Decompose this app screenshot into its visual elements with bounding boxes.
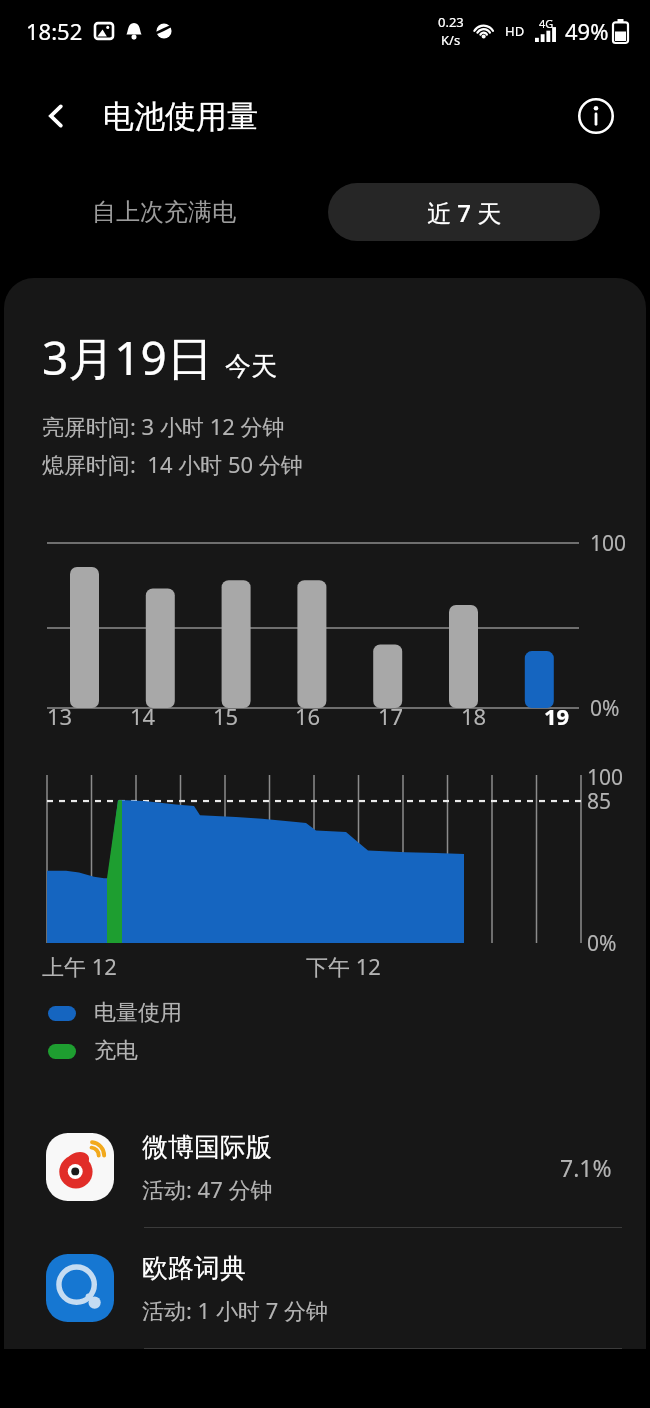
staticText: 0% [590,694,620,723]
button[interactable]: Back [32,92,80,140]
staticText: 3月19日 [42,326,213,389]
staticText: 熄屏时间: 14 小时 50 分钟 [42,449,303,479]
button[interactable]: 自上次充满电 [72,184,256,240]
button[interactable]: 近 7 天 [328,183,600,241]
staticText: 18:52 [26,16,83,46]
button[interactable]: Information [572,92,620,140]
staticText: 0% [587,929,617,958]
staticText: 19 [544,701,570,731]
staticText: 85 [587,787,612,816]
staticText: 活动: 47 分钟 [142,1174,273,1204]
staticText: 17 [378,701,404,731]
staticText: 微博国际版 [142,1131,272,1164]
staticText: 14 [130,701,156,731]
staticText: 近 7 天 [427,196,502,229]
staticText: 7.1% [560,1152,612,1183]
staticText: 100 [587,763,624,792]
staticText: 49% [565,16,609,46]
staticText: 亮屏时间: 3 小时 12 分钟 [42,411,285,441]
staticText: 下午 12 [306,951,381,981]
staticText: 上午 12 [42,951,117,981]
staticText: 今天 [225,350,277,383]
staticText: K/s [441,31,461,49]
staticText: 0.23 [438,13,464,31]
staticText: 100 [590,529,627,558]
staticText: 13 [47,701,73,731]
staticText: 15 [213,701,239,731]
staticText: 18 [461,701,487,731]
button[interactable]: 微博国际版 [4,1107,646,1227]
staticText: 16 [295,701,321,731]
staticText: 电量使用 [94,999,182,1027]
staticText: 自上次充满电 [92,197,236,227]
staticText: 充电 [94,1037,138,1065]
staticText: 4G [539,16,554,31]
staticText: 活动: 1 小时 7 分钟 [142,1295,328,1325]
staticText: HD [505,22,525,40]
staticText: 电池使用量 [103,97,258,136]
staticText: 欧路词典 [142,1252,246,1285]
button[interactable]: 欧路词典 [4,1228,646,1348]
